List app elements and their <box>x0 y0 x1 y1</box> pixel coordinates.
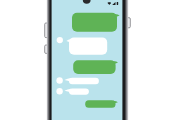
button[interactable]: Messaging app on phone <box>0 0 180 120</box>
